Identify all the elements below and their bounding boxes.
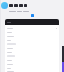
button[interactable]: Badge (31, 14, 34, 17)
button[interactable] (7, 59, 57, 61)
button[interactable] (7, 39, 57, 41)
button[interactable] (7, 47, 57, 49)
button[interactable]: App logo (0, 0, 64, 9)
button[interactable] (7, 43, 57, 45)
button[interactable] (7, 55, 57, 57)
button[interactable]: Scrollbar (62, 46, 64, 72)
button[interactable] (7, 63, 57, 65)
button[interactable] (7, 71, 57, 72)
button[interactable] (7, 51, 57, 53)
button[interactable] (7, 27, 57, 29)
other: App logo (1, 2, 8, 9)
button[interactable] (7, 67, 57, 69)
button[interactable]: Top bar (5, 19, 59, 25)
button[interactable] (7, 31, 57, 33)
button[interactable] (7, 35, 57, 37)
